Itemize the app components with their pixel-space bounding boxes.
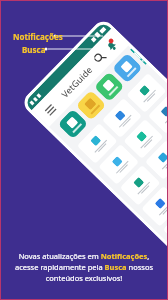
- button[interactable]: [120, 165, 161, 206]
- button[interactable]: [98, 144, 139, 185]
- button[interactable]: [102, 98, 142, 138]
- button[interactable]: Busca: [91, 49, 108, 66]
- button[interactable]: [145, 140, 168, 180]
- button[interactable]: [112, 53, 143, 84]
- button[interactable]: [126, 73, 167, 113]
- button[interactable]: [148, 94, 168, 134]
- button[interactable]: [123, 119, 164, 159]
- staticText: Notificações: [13, 31, 63, 42]
- staticText: Busca: [22, 44, 46, 55]
- staticText: Novas atualizações em Notificações, aces…: [0, 251, 168, 283]
- button[interactable]: [77, 123, 118, 164]
- button[interactable]: [57, 108, 88, 139]
- button[interactable]: Menu: [44, 103, 56, 116]
- button[interactable]: [166, 161, 168, 201]
- button[interactable]: [130, 48, 147, 65]
- button[interactable]: [75, 90, 107, 121]
- staticText: VetGuide: [58, 63, 95, 100]
- button[interactable]: [94, 71, 125, 102]
- button[interactable]: [141, 186, 168, 227]
- button[interactable]: [163, 207, 168, 248]
- button[interactable]: Notificações: [103, 37, 120, 54]
